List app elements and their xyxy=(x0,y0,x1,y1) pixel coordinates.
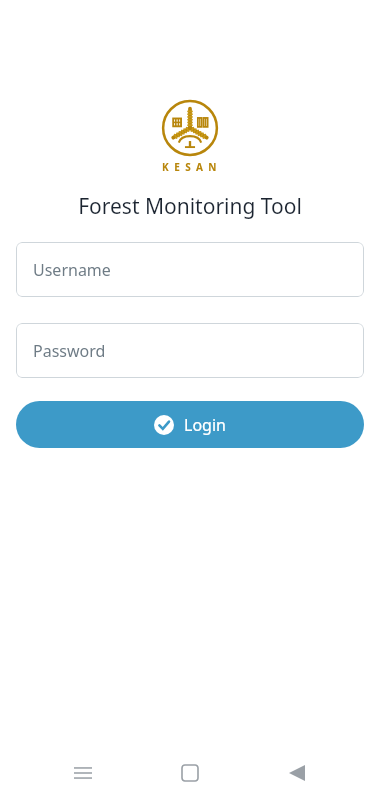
button[interactable]: Back xyxy=(273,749,321,797)
staticText: Password xyxy=(33,340,106,362)
button[interactable]: Password xyxy=(16,323,364,378)
staticText: Login xyxy=(184,414,226,436)
staticText: Username xyxy=(33,259,111,281)
button[interactable]: Home xyxy=(166,749,214,797)
button[interactable]: Login xyxy=(16,401,364,448)
staticText: K E S A N xyxy=(162,160,218,174)
button[interactable]: Recent apps xyxy=(59,749,107,797)
staticText: Forest Monitoring Tool xyxy=(78,192,302,221)
button[interactable]: Username xyxy=(16,242,364,297)
